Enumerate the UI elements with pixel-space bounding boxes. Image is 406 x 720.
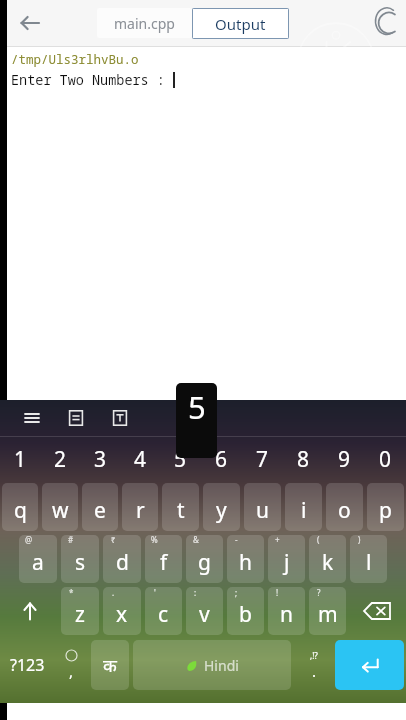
staticText: a bbox=[32, 548, 44, 577]
button[interactable]: i bbox=[285, 483, 322, 531]
staticText: ?123 bbox=[10, 654, 45, 676]
staticText: Enter Two Numbers : bbox=[11, 71, 173, 89]
staticText: w bbox=[52, 496, 69, 525]
staticText: p bbox=[379, 496, 392, 525]
staticText: 8 bbox=[297, 445, 310, 474]
button[interactable]: * bbox=[61, 587, 99, 635]
staticText: m bbox=[318, 600, 338, 629]
button[interactable]: ) bbox=[350, 535, 387, 583]
button[interactable]: q bbox=[2, 483, 38, 531]
button[interactable]: 0 bbox=[365, 437, 406, 481]
staticText: t bbox=[177, 496, 185, 525]
staticText: क bbox=[103, 653, 117, 678]
button[interactable]: ₹ bbox=[103, 535, 141, 583]
button[interactable]: Back bbox=[15, 8, 45, 38]
button[interactable]: ' bbox=[145, 587, 182, 635]
staticText: Output bbox=[215, 14, 266, 34]
staticText: 4 bbox=[134, 445, 147, 474]
button[interactable]: r bbox=[122, 483, 158, 531]
button[interactable]: 4 bbox=[120, 437, 160, 481]
button[interactable]: y bbox=[203, 483, 240, 531]
button[interactable]: Hindi bbox=[133, 640, 291, 690]
staticText: ) bbox=[358, 535, 361, 545]
staticText: n bbox=[280, 600, 293, 629]
staticText: d bbox=[116, 548, 129, 577]
button[interactable]: - bbox=[227, 535, 264, 583]
button[interactable]: ! bbox=[268, 587, 305, 635]
button[interactable]: Dark mode bbox=[376, 10, 402, 36]
staticText: ? bbox=[317, 587, 321, 598]
staticText: k bbox=[322, 548, 334, 577]
button[interactable]: ? bbox=[309, 587, 346, 635]
button[interactable]: main.cpp bbox=[97, 8, 192, 38]
staticText: i bbox=[301, 496, 307, 525]
button[interactable]: Text bbox=[110, 408, 130, 428]
button[interactable]: u bbox=[244, 483, 281, 531]
staticText: * bbox=[69, 587, 74, 598]
staticText: 5 bbox=[174, 445, 187, 474]
button[interactable]: # bbox=[61, 535, 99, 583]
button[interactable]: + bbox=[268, 535, 305, 583]
button[interactable]: ?123 bbox=[0, 640, 54, 690]
button[interactable]: 9 bbox=[324, 437, 365, 481]
button[interactable]: . bbox=[103, 587, 141, 635]
button[interactable]: Backspace bbox=[348, 587, 406, 635]
button[interactable]: ,!? bbox=[293, 640, 335, 690]
staticText: z bbox=[75, 600, 85, 629]
button[interactable]: 1 bbox=[0, 437, 40, 481]
button[interactable]: & bbox=[186, 535, 223, 583]
staticText: q bbox=[14, 496, 27, 525]
staticText: 2 bbox=[54, 445, 67, 474]
button[interactable]: 8 bbox=[283, 437, 324, 481]
button[interactable]: क bbox=[91, 640, 129, 690]
staticText: ₹ bbox=[111, 535, 116, 545]
button[interactable]: e bbox=[82, 483, 118, 531]
button[interactable]: Emoji bbox=[54, 640, 89, 690]
staticText: f bbox=[160, 548, 168, 577]
button[interactable]: ; bbox=[227, 587, 264, 635]
button[interactable]: 2 bbox=[40, 437, 80, 481]
staticText: l bbox=[366, 548, 372, 577]
staticText: , bbox=[69, 661, 74, 681]
button[interactable]: : bbox=[186, 587, 223, 635]
staticText: 6 bbox=[215, 445, 228, 474]
button[interactable]: 3 bbox=[80, 437, 120, 481]
staticText: ; bbox=[235, 587, 238, 598]
button[interactable]: 5 bbox=[160, 437, 201, 481]
staticText: ' bbox=[154, 587, 156, 598]
staticText: c bbox=[158, 600, 169, 629]
staticText: o bbox=[338, 496, 351, 525]
button[interactable]: o bbox=[326, 483, 363, 531]
button[interactable]: Shift bbox=[0, 587, 59, 635]
button[interactable]: Output bbox=[192, 8, 289, 39]
staticText: h bbox=[239, 548, 252, 577]
button[interactable]: @ bbox=[19, 535, 57, 583]
staticText: 7 bbox=[256, 445, 269, 474]
staticText: ,!? bbox=[310, 650, 318, 661]
staticText: 5 bbox=[188, 386, 206, 428]
button[interactable]: 6 bbox=[201, 437, 242, 481]
button[interactable]: % bbox=[145, 535, 182, 583]
staticText: . bbox=[112, 587, 115, 598]
staticText: & bbox=[193, 535, 199, 545]
staticText: x bbox=[116, 600, 128, 629]
button[interactable]: Clipboard bbox=[66, 408, 86, 428]
button[interactable]: Enter bbox=[335, 640, 404, 690]
staticText: 1 bbox=[14, 445, 27, 474]
button[interactable]: w bbox=[42, 483, 78, 531]
staticText: b bbox=[239, 600, 252, 629]
button[interactable]: t bbox=[162, 483, 199, 531]
staticText: 9 bbox=[338, 445, 351, 474]
staticText: j bbox=[284, 548, 290, 577]
button[interactable]: ( bbox=[309, 535, 346, 583]
staticText: ! bbox=[276, 587, 279, 598]
staticText: v bbox=[199, 600, 210, 629]
staticText: s bbox=[75, 548, 86, 577]
button[interactable]: p bbox=[367, 483, 404, 531]
staticText: 3 bbox=[94, 445, 107, 474]
staticText: . bbox=[312, 661, 317, 681]
staticText: + bbox=[275, 535, 280, 545]
button[interactable]: 7 bbox=[242, 437, 283, 481]
button[interactable]: Menu bbox=[22, 408, 42, 428]
